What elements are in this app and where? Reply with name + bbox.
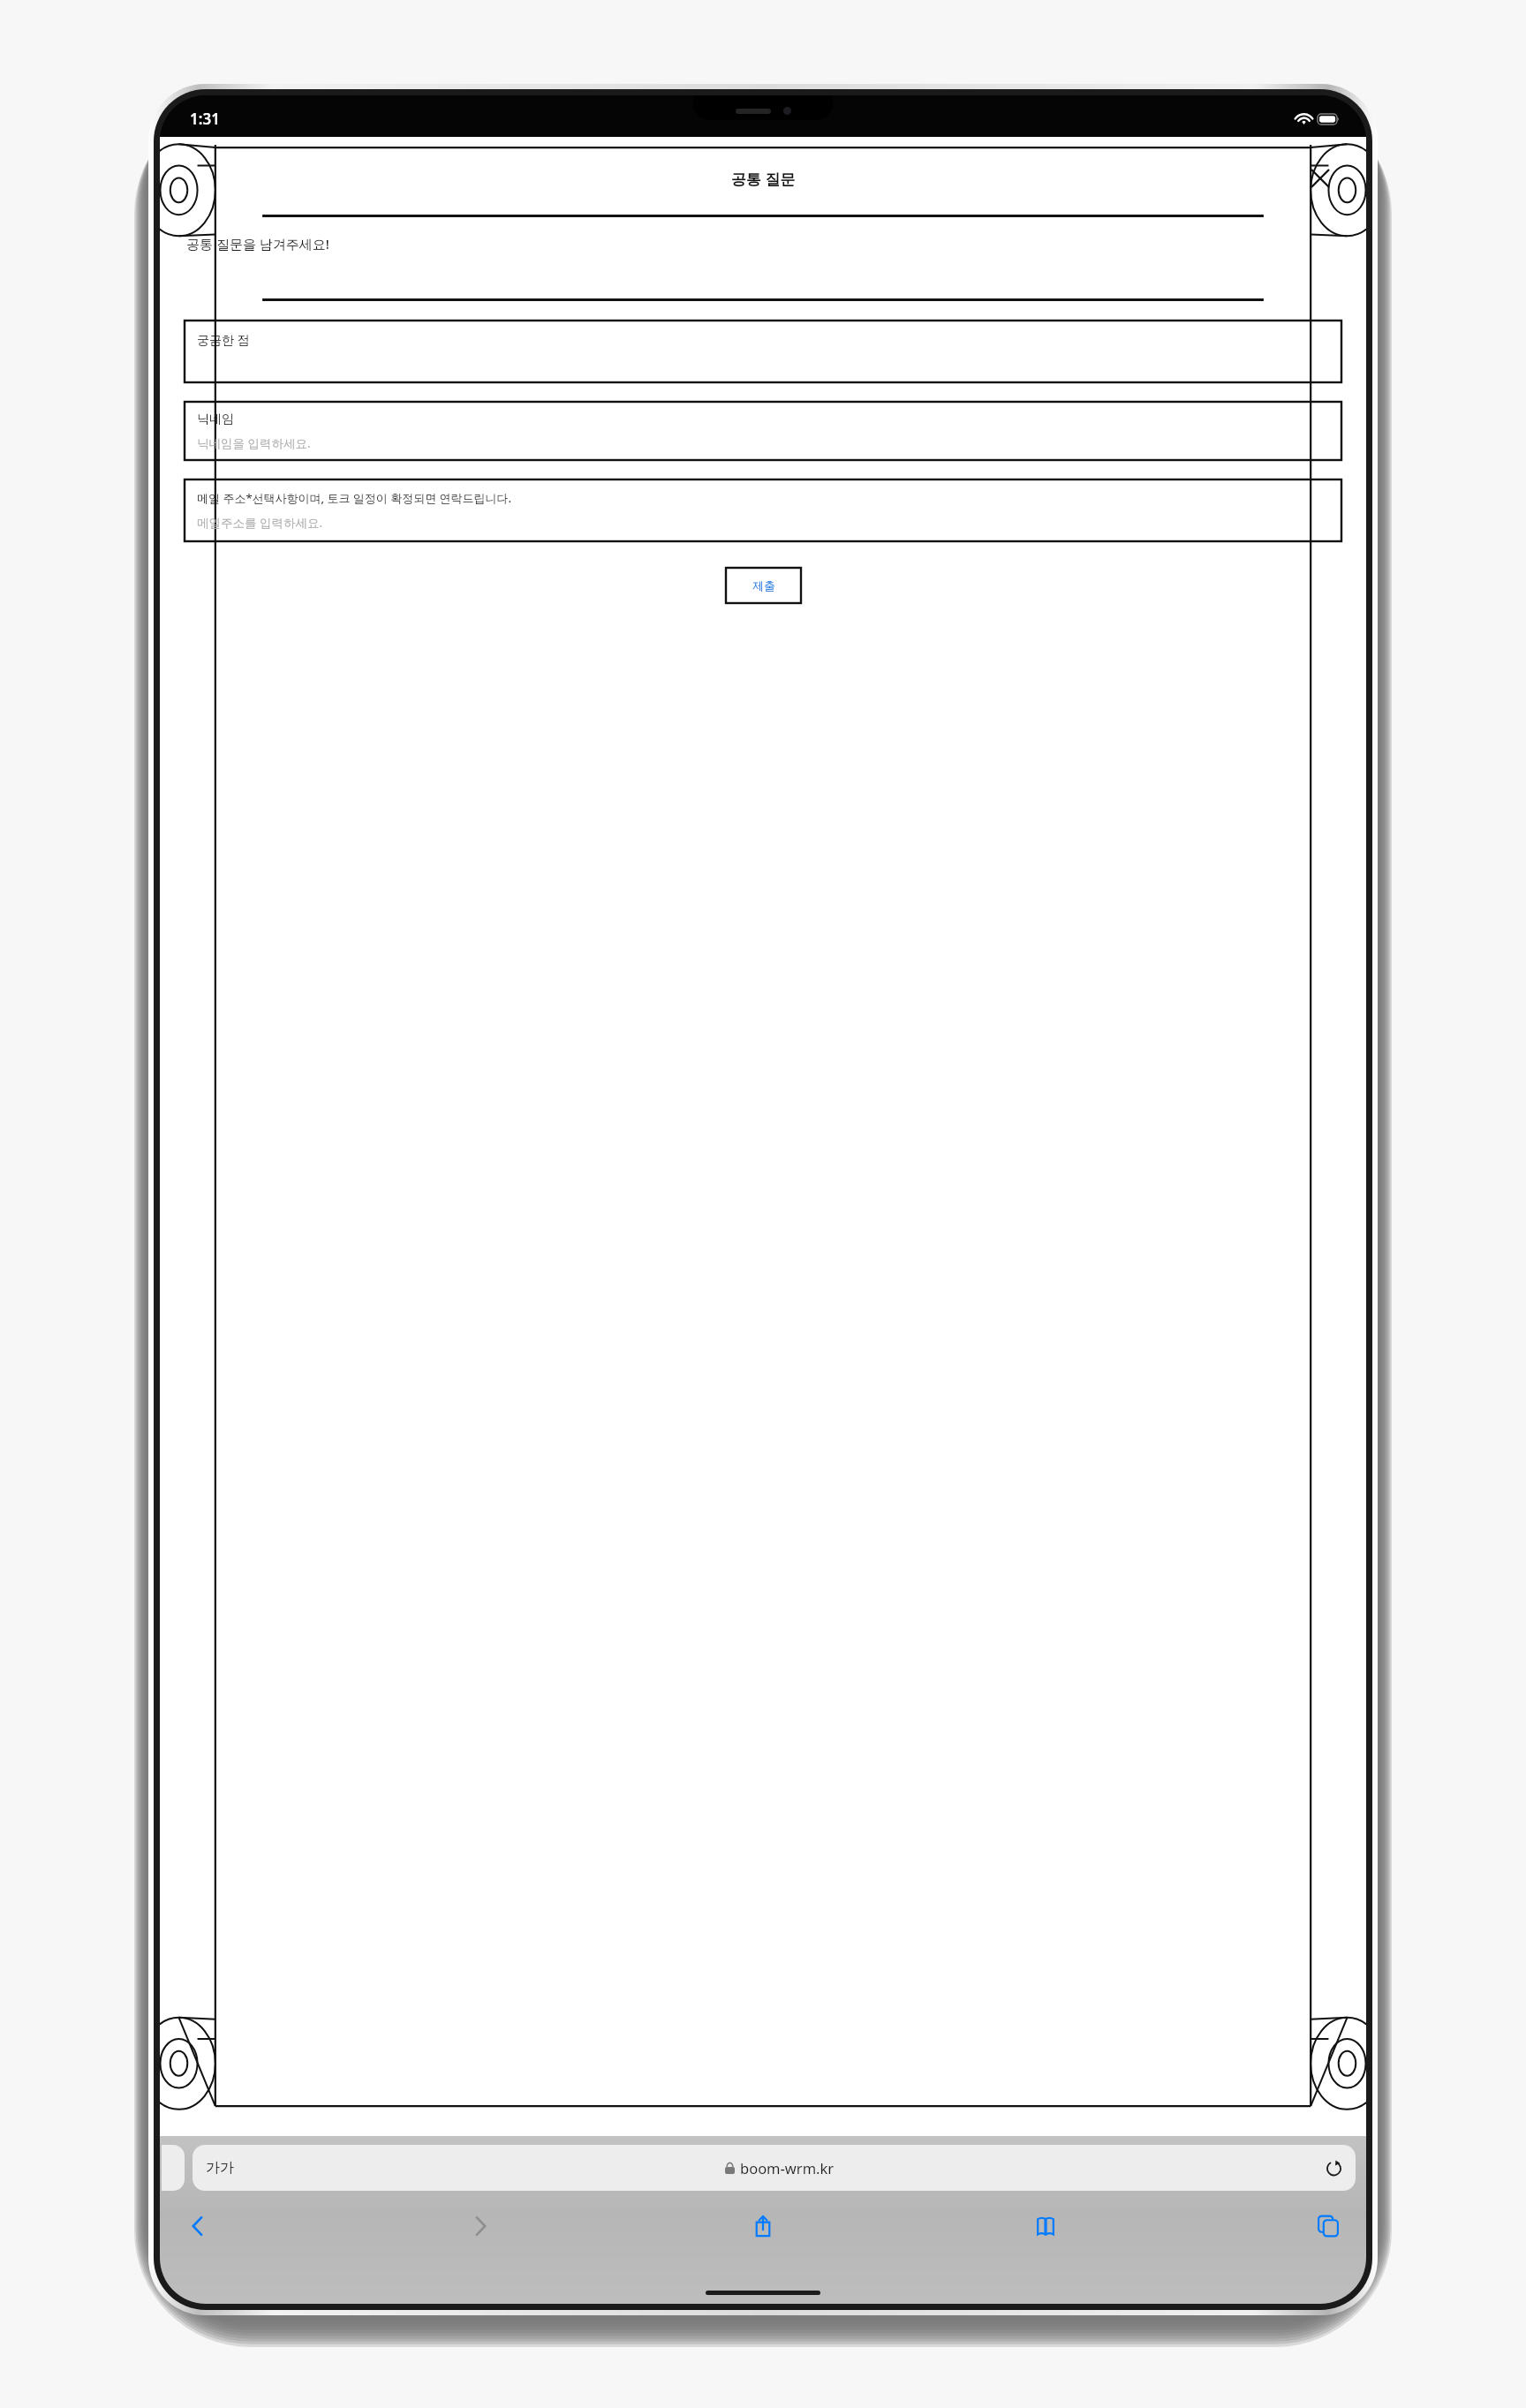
staticText: 제출 — [752, 578, 775, 593]
staticText: 닉네임 — [197, 411, 234, 427]
staticText: 가가 — [206, 2159, 234, 2177]
button[interactable]: Close — [1305, 163, 1335, 193]
button[interactable]: Back — [174, 2202, 222, 2250]
button[interactable]: Tabs — [1304, 2202, 1352, 2250]
other: Reload — [1326, 2160, 1342, 2177]
staticText: 메일 주소*선택사항이며, 토크 일정이 확정되면 연락드립니다. — [197, 490, 512, 506]
staticText: 메일주소를 입력하세요. — [197, 515, 323, 531]
button[interactable]: Bookmarks — [1022, 2202, 1069, 2250]
button[interactable]: 닉네임 — [185, 402, 1341, 460]
button[interactable]: 제출 — [726, 568, 801, 603]
button[interactable]: Forward — [457, 2202, 504, 2250]
staticText: boom-wrm.kr — [740, 2158, 835, 2178]
staticText: 궁금한 점 — [197, 331, 250, 348]
button[interactable]: 메일 주소*선택사항이며, 토크 일정이 확정되면 연락드립니다. — [185, 479, 1341, 541]
button[interactable]: Share — [739, 2202, 787, 2250]
button[interactable]: 궁금한 점 — [185, 321, 1341, 382]
button[interactable]: Previous tab — [162, 2145, 185, 2191]
staticText: 닉네임을 입력하세요. — [197, 435, 311, 451]
staticText: 1:31 — [190, 109, 220, 129]
staticText: 공통 질문을 남겨주세요! — [186, 235, 329, 253]
button[interactable]: 가가 — [193, 2145, 1356, 2191]
staticText: 공통 질문 — [731, 169, 796, 189]
